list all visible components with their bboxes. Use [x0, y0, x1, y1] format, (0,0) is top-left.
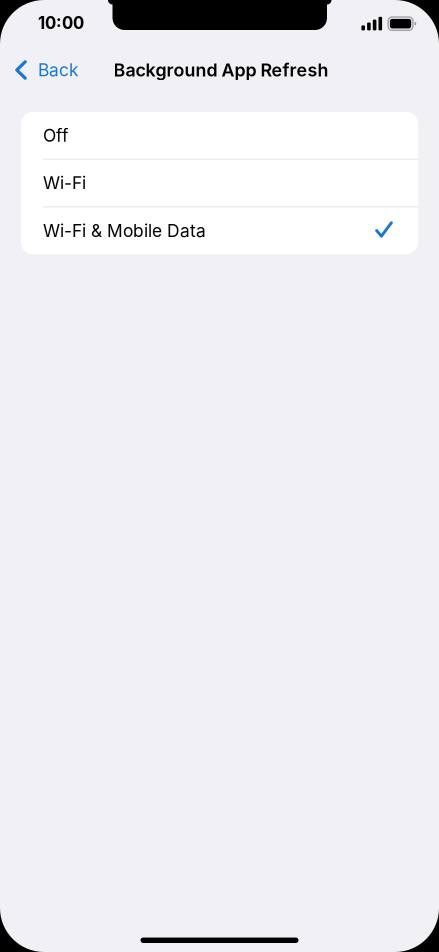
button[interactable]: Off [21, 112, 418, 159]
staticText: Background App Refresh [113, 59, 328, 81]
staticText: Off [43, 125, 68, 146]
staticText: Wi-Fi & Mobile Data [43, 220, 206, 241]
staticText: Back [38, 59, 79, 80]
button[interactable]: Wi-Fi [21, 160, 418, 206]
button[interactable]: Back [0, 46, 91, 94]
staticText: 10:00 [38, 13, 84, 33]
button[interactable]: Wi-Fi & Mobile Data [21, 207, 418, 254]
staticText: Wi-Fi [43, 173, 86, 194]
